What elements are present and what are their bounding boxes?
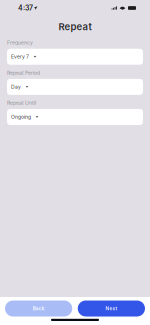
staticText: Repeat Period: [7, 70, 40, 76]
staticText: Repeat: [58, 21, 91, 33]
staticText: Back: [33, 306, 45, 311]
button[interactable]: Next: [78, 300, 145, 316]
staticText: Day: [11, 84, 21, 90]
staticText: Repeat Until: [7, 100, 36, 106]
staticText: Ongoing: [11, 114, 31, 120]
staticText: 4:37: [18, 4, 33, 12]
staticText: Every 7: [11, 54, 29, 60]
button[interactable]: Every 7: [7, 49, 143, 65]
button[interactable]: Day: [7, 79, 143, 95]
button[interactable]: Back: [5, 300, 72, 316]
button[interactable]: Ongoing: [7, 109, 143, 125]
staticText: Next: [105, 306, 117, 311]
staticText: Frequency: [7, 40, 33, 46]
